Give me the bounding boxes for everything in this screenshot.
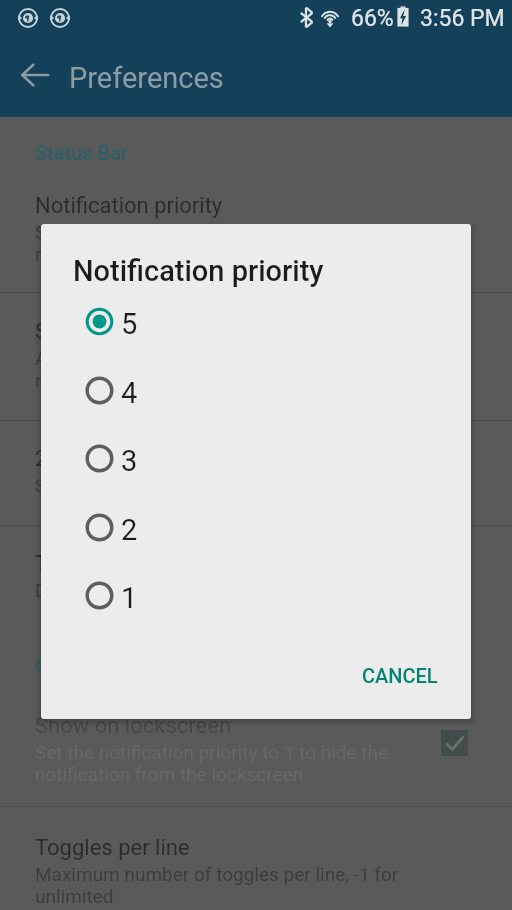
staticText: 66% [351, 5, 394, 32]
button[interactable]: 4 [41, 356, 471, 424]
staticText: Set the notification priority to 1 to hi… [35, 741, 389, 785]
staticText: Set the notification priority for the no… [35, 221, 318, 265]
staticText: Show time in 24 hour format [35, 474, 275, 496]
button[interactable]: Show on lockscreen [0, 699, 512, 787]
staticText: 5 [121, 307, 138, 341]
staticText: 2 [121, 513, 138, 547]
staticText: Notification priority [35, 193, 223, 219]
button[interactable]: 2 [41, 493, 471, 561]
staticText: 3:56 PM [420, 5, 505, 32]
staticText: 4 [121, 376, 138, 410]
staticText: Show on lockscreen [35, 713, 232, 739]
staticText: Other [35, 654, 85, 677]
button[interactable]: Navigate up [8, 48, 62, 102]
button[interactable]: Show icon [0, 305, 512, 393]
staticText: 3 [121, 444, 138, 478]
button[interactable]: 1 [41, 561, 471, 629]
staticText: Maximum number of toggles per line, -1 f… [35, 863, 399, 907]
staticText: CANCEL [362, 664, 438, 687]
staticText: Notification priority [73, 254, 324, 288]
button[interactable]: Toggles per line [0, 821, 512, 909]
button[interactable]: Theme [0, 537, 512, 625]
button[interactable]: CANCEL [352, 654, 448, 697]
staticText: 1 [121, 581, 138, 615]
staticText: Adds an icon to the status bar when the … [35, 347, 370, 391]
button[interactable]: 3 [41, 424, 471, 492]
staticText: Toggles per line [35, 835, 190, 861]
staticText: 24 hour format [35, 446, 181, 472]
staticText: Theme [35, 551, 103, 577]
staticText: Dark [35, 579, 74, 601]
staticText: Status Bar [35, 141, 129, 164]
staticText: Preferences [69, 61, 224, 95]
staticText: Show icon [35, 319, 137, 345]
button[interactable]: 5 [41, 287, 471, 355]
button[interactable]: Notification priority [0, 179, 512, 267]
button[interactable]: 24 hour format [0, 432, 512, 520]
